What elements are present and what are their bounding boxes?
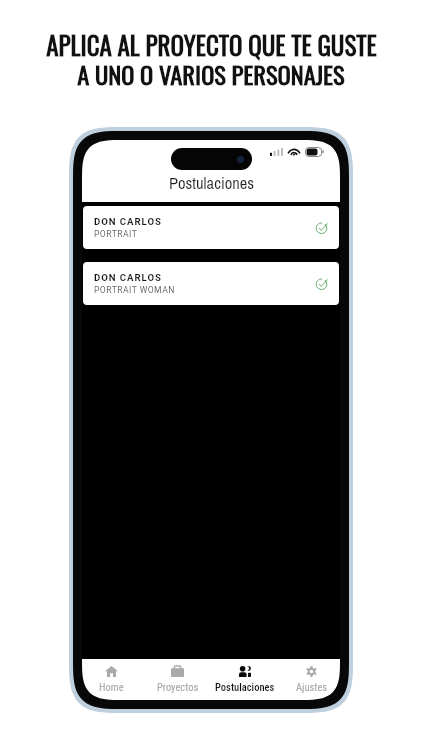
- staticText: A UNO O VARIOS PERSONAJES: [77, 56, 345, 92]
- staticText: DON CARLOS: [94, 272, 162, 283]
- staticText: Postulaciones: [215, 681, 275, 693]
- button[interactable]: DON CARLOS: [83, 206, 339, 249]
- staticText: PORTRAIT WOMAN: [94, 285, 175, 295]
- button[interactable]: Proyectos: [144, 659, 211, 700]
- button[interactable]: Home: [82, 659, 144, 700]
- button[interactable]: Ajustes: [278, 659, 340, 700]
- staticText: Home: [99, 681, 124, 693]
- button[interactable]: Postulaciones: [211, 659, 278, 700]
- staticText: PORTRAIT: [94, 229, 138, 239]
- staticText: Ajustes: [296, 681, 328, 693]
- staticText: Postulaciones: [169, 172, 254, 194]
- staticText: DON CARLOS: [94, 216, 162, 227]
- staticText: Proyectos: [157, 681, 199, 693]
- button[interactable]: DON CARLOS: [83, 262, 339, 305]
- staticText: APLICA AL PROYECTO QUE TE GUSTE: [46, 26, 377, 63]
